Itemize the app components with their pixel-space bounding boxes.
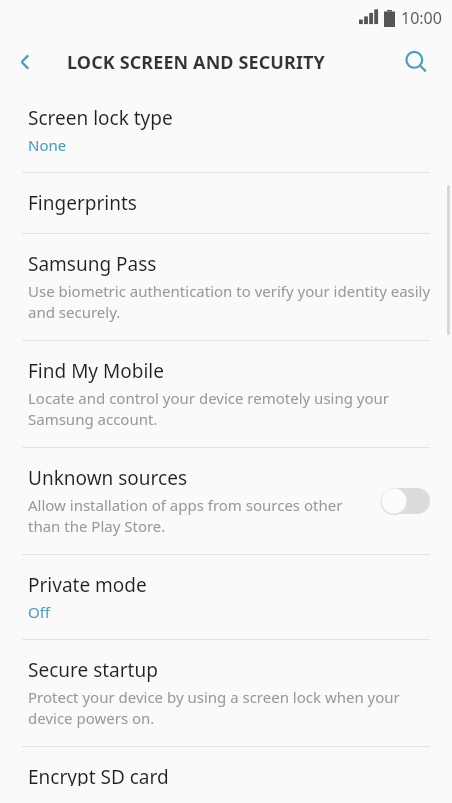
button[interactable]: Unknown sources toggle: [380, 486, 432, 516]
staticText: Allow installation of apps from sources …: [28, 495, 366, 537]
staticText: Secure startup: [28, 657, 158, 683]
staticText: Encrypt SD card: [28, 764, 169, 786]
button[interactable]: Unknown sources: [0, 448, 452, 554]
button[interactable]: Search: [394, 40, 438, 84]
staticText: Private mode: [28, 572, 147, 598]
button[interactable]: Private mode: [0, 555, 452, 639]
staticText: Locate and control your device remotely …: [28, 388, 432, 430]
button[interactable]: Fingerprints: [0, 173, 452, 233]
staticText: Screen lock type: [28, 105, 173, 131]
staticText: Use biometric authentication to verify y…: [28, 281, 432, 323]
staticText: Find My Mobile: [28, 358, 164, 384]
staticText: None: [28, 135, 67, 155]
button[interactable]: Back: [0, 36, 52, 88]
button[interactable]: Find My Mobile: [0, 341, 452, 447]
staticText: Samsung Pass: [28, 251, 157, 277]
staticText: Protect your device by using a screen lo…: [28, 687, 432, 729]
button[interactable]: Secure startup: [0, 640, 452, 746]
staticText: Off: [28, 602, 51, 622]
staticText: Fingerprints: [28, 190, 137, 216]
button[interactable]: Samsung Pass: [0, 234, 452, 340]
staticText: 10:00: [401, 7, 442, 29]
staticText: LOCK SCREEN AND SECURITY: [67, 50, 325, 75]
staticText: Unknown sources: [28, 465, 187, 491]
button[interactable]: Encrypt SD card: [0, 747, 452, 803]
button[interactable]: Screen lock type: [0, 88, 452, 172]
